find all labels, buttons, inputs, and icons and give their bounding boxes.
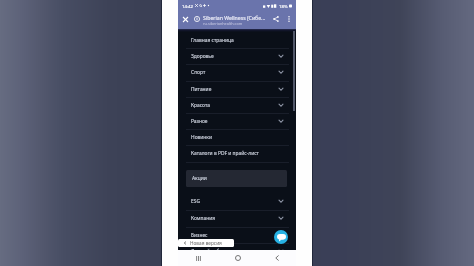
staticText: Siberian Wellness (Сибе...	[203, 14, 266, 21]
button[interactable]: Спорт	[178, 64, 296, 80]
staticText: Компания	[191, 215, 216, 222]
button[interactable]: Акции	[186, 170, 287, 187]
button[interactable]: Share	[270, 13, 282, 25]
button[interactable]: Красота	[178, 97, 296, 113]
staticText: ru.siberianhealth.com	[203, 21, 243, 26]
button[interactable]: Новинки	[178, 129, 296, 145]
staticText: Новая версия магазина	[190, 240, 234, 246]
button[interactable]: Новая версия магазина	[178, 239, 234, 247]
button[interactable]: Здоровье	[178, 48, 296, 64]
button[interactable]: ESG	[178, 193, 296, 209]
button[interactable]: Site information	[191, 13, 203, 25]
staticText: Красота	[191, 102, 210, 109]
button[interactable]: Разное	[178, 113, 296, 129]
button[interactable]: Back	[257, 250, 296, 266]
button[interactable]: Личный кабинет	[178, 243, 296, 259]
staticText: Бизнес	[191, 232, 208, 239]
staticText: 14:42	[182, 3, 193, 9]
staticText: Питание	[191, 86, 212, 93]
staticText: 18%	[279, 3, 288, 9]
staticText: Каталоги в PDF и прайс-лист	[191, 150, 259, 157]
button[interactable]: Главная страница	[178, 32, 296, 48]
button[interactable]: Open chat	[274, 230, 288, 244]
button[interactable]: Бизнес	[178, 227, 296, 243]
staticText: Спорт	[191, 69, 206, 76]
button[interactable]: Recent apps	[178, 250, 218, 266]
staticText: Акции	[192, 175, 207, 182]
staticText: Главная страница	[191, 37, 234, 44]
button[interactable]: Home	[218, 250, 257, 266]
staticText: Новинки	[191, 134, 212, 141]
button[interactable]: Компания	[178, 210, 296, 226]
button[interactable]: More options	[283, 13, 295, 25]
staticText: ESG	[191, 198, 200, 205]
staticText: Разное	[191, 118, 208, 125]
button[interactable]: Питание	[178, 81, 296, 97]
staticText: Здоровье	[191, 53, 214, 60]
button[interactable]: Close	[179, 13, 191, 25]
staticText: Личный кабинет	[191, 248, 231, 255]
button[interactable]: Каталоги в PDF и прайс-лист	[178, 145, 296, 161]
